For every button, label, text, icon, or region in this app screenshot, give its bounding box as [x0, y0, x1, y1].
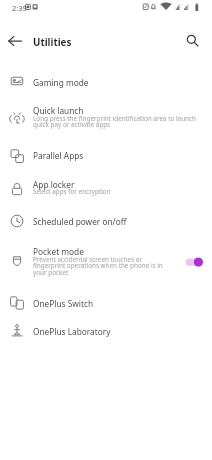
button[interactable] [0, 67, 212, 96]
button[interactable]: Pocket mode toggle [182, 253, 206, 271]
button[interactable] [0, 317, 212, 346]
staticText: Select apps for encryption [33, 187, 203, 196]
staticText: Scheduled power on/off [33, 216, 127, 227]
button[interactable] [0, 288, 212, 317]
staticText: App locker [33, 179, 75, 190]
staticText: OnePlus Switch [33, 298, 94, 309]
button[interactable] [0, 235, 212, 281]
staticText: Utilities [33, 36, 72, 49]
staticText: Long press the fingerprint identificatio… [33, 114, 203, 129]
staticText: Parallel Apps [33, 150, 84, 161]
button[interactable] [0, 96, 212, 135]
staticText: Prevent accidental screen touches or fin… [33, 255, 185, 277]
button[interactable] [0, 170, 212, 202]
staticText: Quick launch [33, 105, 84, 116]
button[interactable] [0, 207, 212, 235]
staticText: OnePlus Laboratory [33, 326, 111, 337]
button[interactable]: Search [182, 30, 203, 51]
staticText: Gaming mode [33, 77, 89, 88]
staticText: Pocket mode [33, 246, 84, 257]
button[interactable] [0, 141, 212, 170]
button[interactable]: Back [4, 30, 25, 51]
staticText: 2:39 [12, 3, 27, 13]
